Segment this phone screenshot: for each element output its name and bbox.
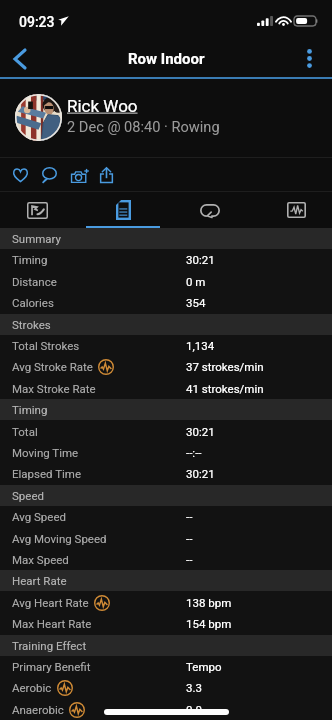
staticText: Moving Time (12, 446, 79, 459)
staticText: Avg Moving Speed (12, 532, 107, 545)
staticText: Tempo (186, 660, 222, 673)
button[interactable]: Distance (0, 271, 332, 292)
button[interactable]: Max Stroke Rate (0, 378, 332, 399)
staticText: 41 strokes/min (186, 382, 264, 395)
staticText: Strokes (12, 318, 51, 331)
button[interactable]: Avg Stroke Rate (0, 356, 332, 377)
button[interactable]: Elapsed Time (0, 463, 332, 484)
button[interactable]: Share (92, 158, 120, 192)
staticText: Elapsed Time (12, 467, 82, 480)
button[interactable]: Aerobic (0, 677, 332, 698)
staticText: -- (186, 553, 193, 566)
button[interactable]: Avg Speed (0, 506, 332, 527)
staticText: 30:21 (186, 425, 215, 438)
staticText: Row Indoor (128, 50, 205, 68)
staticText: Speed (12, 489, 44, 502)
staticText: Anaerobic (12, 703, 64, 716)
button[interactable]: Total Strokes (0, 335, 332, 356)
button[interactable]: Charts (255, 190, 332, 228)
button[interactable]: Map (0, 190, 78, 228)
staticText: Heart Rate (12, 574, 67, 587)
staticText: Timing (12, 253, 48, 266)
button[interactable]: Rick Woo (0, 79, 332, 158)
button[interactable]: Anaerobic (0, 699, 332, 720)
staticText: Summary (12, 232, 62, 245)
staticText: Primary Benefit (12, 660, 91, 673)
staticText: --:-- (186, 446, 202, 459)
staticText: Avg Speed (12, 510, 66, 523)
staticText: Timing (12, 403, 48, 416)
staticText: 0 m (186, 275, 206, 288)
staticText: 09:23 (19, 14, 55, 30)
staticText: Rick Woo (67, 96, 138, 116)
button[interactable]: Details (82, 190, 164, 228)
staticText: 154 bpm (186, 617, 232, 630)
button[interactable]: Laps (169, 190, 251, 228)
staticText: 30:21 (186, 467, 215, 480)
staticText: 1,134 (186, 339, 215, 352)
button[interactable]: Primary Benefit (0, 656, 332, 677)
staticText: 2 Dec @ 08:40 · Rowing (67, 118, 220, 135)
button[interactable]: Calories (0, 292, 332, 313)
button[interactable]: Moving Time (0, 442, 332, 463)
staticText: 0.0 (186, 703, 202, 716)
staticText: Aerobic (12, 681, 52, 694)
staticText: Max Heart Rate (12, 617, 92, 630)
staticText: Avg Stroke Rate (12, 360, 93, 373)
staticText: Calories (12, 296, 54, 309)
button[interactable]: Add photo (66, 158, 94, 192)
staticText: Distance (12, 275, 57, 288)
staticText: -- (186, 532, 193, 545)
button[interactable]: Comment (35, 158, 63, 192)
staticText: Total (12, 425, 38, 438)
button[interactable]: Like (6, 158, 34, 192)
staticText: 138 bpm (186, 596, 232, 609)
staticText: 354 (186, 296, 206, 309)
button[interactable]: Max Speed (0, 549, 332, 570)
button[interactable]: Back (1, 40, 39, 77)
staticText: 30:21 (186, 253, 215, 266)
staticText: 3.3 (186, 681, 202, 694)
staticText: 37 strokes/min (186, 360, 264, 373)
staticText: -- (186, 510, 193, 523)
staticText: Training Effect (12, 639, 87, 652)
button[interactable]: Avg Heart Rate (0, 592, 332, 613)
button[interactable]: Total (0, 421, 332, 442)
button[interactable]: Timing (0, 249, 332, 270)
staticText: Max Stroke Rate (12, 382, 96, 395)
staticText: Total Strokes (12, 339, 80, 352)
button[interactable]: More options (289, 40, 329, 77)
staticText: Max Speed (12, 553, 69, 566)
button[interactable]: Max Heart Rate (0, 613, 332, 634)
staticText: Avg Heart Rate (12, 596, 89, 609)
button[interactable]: Avg Moving Speed (0, 528, 332, 549)
